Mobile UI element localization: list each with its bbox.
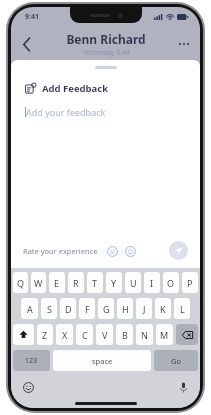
button[interactable]: O [163,272,179,293]
button[interactable]: D [60,298,76,319]
button[interactable]: T [87,272,103,293]
button[interactable]: Y [106,272,122,293]
staticText: O [167,277,175,289]
staticText: Add Feedback [42,82,109,95]
button[interactable]: Emoji [21,380,35,394]
staticText: Benn Richard [66,31,146,47]
button[interactable]: C [76,324,93,345]
button[interactable]: G [98,298,114,319]
button[interactable]: 123 [13,350,50,371]
staticText: Go [171,356,181,366]
staticText: S [47,303,52,315]
button[interactable]: Neutral rating [105,244,119,258]
staticText: 123 [25,356,38,366]
staticText: Z [42,329,48,341]
staticText: R [73,277,79,289]
staticText: N [141,329,148,341]
staticText: F [85,303,90,315]
button[interactable]: Add your feedback [11,106,200,118]
staticText: M [160,329,169,341]
staticText: space [92,356,113,366]
button[interactable]: M [156,324,173,345]
button[interactable]: U [125,272,141,293]
staticText: U [130,277,137,289]
staticText: A [27,303,33,315]
staticText: P [187,277,193,289]
staticText: G [103,303,110,315]
staticText: V [102,329,108,341]
button[interactable]: E [49,272,65,293]
staticText: X [62,329,68,341]
staticText: Rate your experience [23,246,98,256]
button[interactable]: P [182,272,198,293]
button[interactable]: Backspace [176,324,198,345]
staticText: E [54,277,60,289]
button[interactable]: L [174,298,190,319]
button[interactable]: Add Feedback [11,80,200,97]
button[interactable]: Go [154,350,198,371]
staticText: C [82,329,88,341]
button[interactable]: Z [37,324,53,345]
staticText: Add your feedback [26,106,106,118]
button[interactable]: I [144,272,160,293]
button[interactable]: A [21,298,38,319]
staticText: 9:41 [25,12,39,22]
button[interactable]: B [116,324,133,345]
staticText: B [122,329,128,341]
button[interactable]: N [136,324,153,345]
staticText: T [92,277,98,289]
staticText: K [160,303,166,315]
button[interactable]: space [53,350,151,371]
staticText: W [34,277,43,289]
button[interactable]: F [79,298,95,319]
staticText: D [65,303,72,315]
button[interactable]: K [155,298,171,319]
button[interactable]: Send [169,241,188,260]
button[interactable]: Back [15,32,39,56]
staticText: H [122,303,129,315]
button[interactable]: H [117,298,133,319]
button[interactable]: More options [172,32,196,56]
button[interactable]: X [56,324,73,345]
button[interactable]: S [41,298,57,319]
button[interactable]: W [31,272,46,293]
button[interactable]: R [68,272,84,293]
staticText: Yesterday, 5:44 [83,48,130,57]
staticText: I [150,277,154,289]
staticText: L [180,303,185,315]
button[interactable]: Q [13,272,28,293]
staticText: Q [17,277,25,289]
button[interactable]: J [136,298,152,319]
button[interactable]: Happy rating [123,244,137,258]
button[interactable]: Shift [13,324,34,345]
staticText: Y [111,277,117,289]
staticText: J [143,303,146,315]
button[interactable]: V [96,324,113,345]
button[interactable]: Dictate [176,380,190,394]
